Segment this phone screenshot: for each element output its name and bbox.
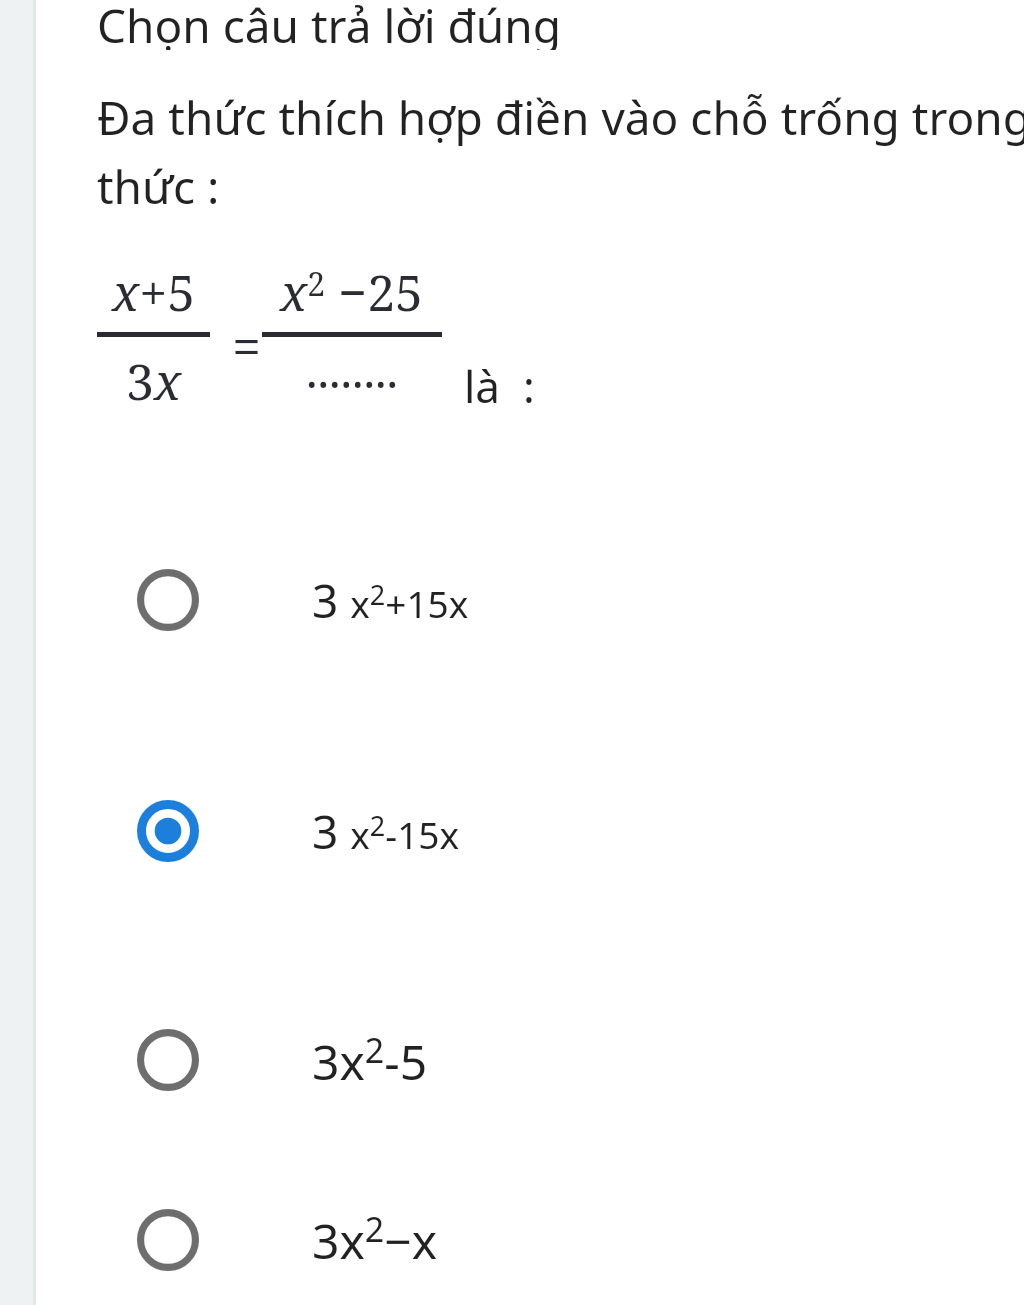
other: Answer option [137,569,199,631]
staticText: x2 −25 [280,258,424,326]
staticText: là : [464,356,535,416]
staticText: thức : [97,155,220,218]
other: Selected answer [137,800,199,862]
staticText: = [232,310,262,381]
button[interactable]: Answer option [0,1174,1024,1305]
button[interactable]: Selected answer [0,716,1024,946]
staticText: 3x [126,347,182,415]
staticText: 3x2-5 [312,1027,428,1094]
button[interactable]: Answer option [0,946,1024,1174]
staticText: ........ [306,339,398,402]
staticText: 3 x2-15x [312,800,460,863]
other: Answer option [137,1209,199,1271]
staticText: Đa thức thích hợp điền vào chỗ trống tro… [97,86,1024,149]
staticText: 3x2−x [312,1206,438,1273]
staticText: Chọn câu trả lời đúng [97,0,562,50]
staticText: 3 x2+15x [312,569,469,632]
other: Answer option [137,1029,199,1091]
staticText: x+5 [112,258,196,326]
button[interactable]: Answer option [0,484,1024,716]
